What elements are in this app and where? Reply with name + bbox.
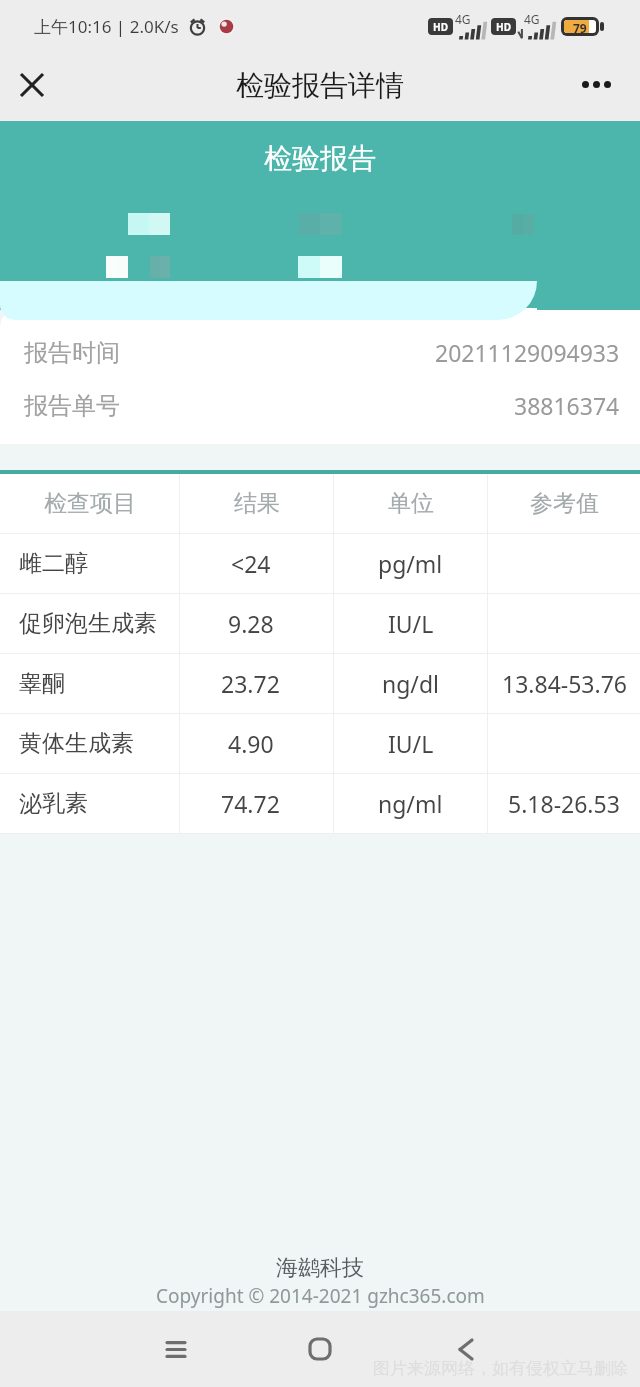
staticText: ng/ml	[378, 788, 443, 819]
staticText: 促卵泡生成素	[19, 609, 157, 638]
staticText: 检验报告详情	[236, 68, 404, 103]
staticText: HD	[433, 20, 448, 34]
staticText: 结果	[234, 489, 280, 518]
staticText: 检查项目	[44, 489, 136, 518]
staticText: HD	[496, 20, 511, 34]
staticText: IU/L	[388, 728, 434, 759]
staticText: 9.28	[228, 608, 274, 639]
staticText: 5.18-26.53	[508, 788, 620, 819]
button[interactable]: Home	[284, 1313, 356, 1385]
staticText: 4.90	[228, 728, 274, 759]
staticText: 23.72	[221, 668, 280, 699]
staticText: pg/ml	[378, 548, 443, 579]
staticText: 单位	[388, 489, 434, 518]
staticText: 4G	[455, 11, 471, 27]
staticText: 4G	[524, 11, 540, 27]
button[interactable]: Back	[430, 1313, 502, 1385]
staticText: 13.84-53.76	[502, 668, 627, 699]
staticText: ng/dl	[382, 668, 439, 699]
staticText: 报告时间	[24, 338, 120, 368]
staticText: 雌二醇	[19, 549, 88, 578]
staticText: 79	[573, 20, 587, 33]
button[interactable]: Close	[4, 57, 60, 113]
staticText: Copyright © 2014-2021 gzhc365.com	[156, 1283, 485, 1309]
button[interactable]: Recent apps	[140, 1313, 212, 1385]
staticText: 海鹚科技	[276, 1254, 364, 1282]
staticText: 38816374	[514, 390, 620, 421]
staticText: 黄体生成素	[19, 729, 134, 758]
staticText: 泌乳素	[19, 789, 88, 818]
staticText: <24	[231, 548, 271, 579]
staticText: 图片来源网络，如有侵权立马删除	[373, 1358, 628, 1379]
staticText: IU/L	[388, 608, 434, 639]
staticText: 上午10:16 | 2.0K/s	[34, 15, 179, 38]
button[interactable]: More options	[568, 56, 624, 112]
staticText: 报告单号	[24, 391, 120, 421]
staticText: 参考值	[530, 489, 599, 518]
staticText: 74.72	[221, 788, 280, 819]
staticText: 20211129094933	[435, 337, 620, 368]
staticText: 睾酮	[19, 669, 65, 698]
staticText: 检验报告	[264, 141, 376, 176]
